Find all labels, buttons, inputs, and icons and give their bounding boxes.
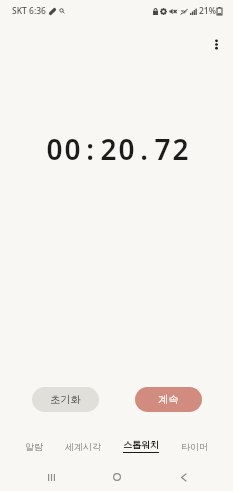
staticText: . [140,130,148,168]
button[interactable]: More options [203,31,229,57]
staticText: 0 [46,130,63,168]
staticText: 0 [118,130,135,168]
button[interactable]: 초기화 [32,387,99,412]
button[interactable]: Home [100,463,134,491]
button[interactable]: Recents [34,463,68,491]
staticText: : [86,130,94,168]
staticText: 계속 [158,393,179,406]
button[interactable]: Back [166,463,200,491]
staticText: 타이머 [181,441,208,452]
staticText: 알람 [25,441,43,452]
staticText: 세계시각 [65,441,101,452]
staticText: 2 [100,130,117,168]
staticText: 0 [64,130,81,168]
button[interactable]: 계속 [135,387,202,412]
staticText: 초기화 [50,393,81,406]
staticText: 7 [154,130,171,168]
button[interactable]: 타이머 [170,436,219,456]
staticText: 21% [199,5,216,17]
staticText: 스톱워치 [123,439,159,450]
staticText: SKT 6:36 [12,5,46,17]
button[interactable]: 세계시각 [54,436,112,456]
button[interactable]: 스톱워치 [112,436,170,456]
staticText: 2 [172,130,189,168]
button[interactable]: 알람 [14,436,54,456]
